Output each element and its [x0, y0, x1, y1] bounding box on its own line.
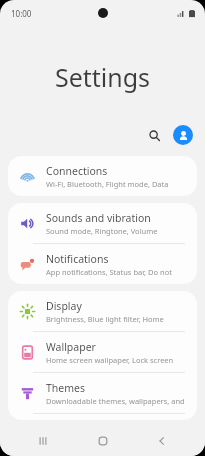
button[interactable]: Wallpaper [8, 332, 197, 372]
staticText: 10:00 [11, 8, 32, 19]
button[interactable]: Home [86, 426, 120, 456]
staticText: Wi-Fi, Bluetooth, Flight mode, Data usag… [46, 179, 187, 189]
staticText: Sounds and vibration [46, 211, 151, 225]
button[interactable]: Display [8, 291, 197, 331]
button[interactable]: Notifications [8, 244, 197, 284]
button[interactable]: Themes [8, 373, 197, 413]
button[interactable]: Account [173, 125, 193, 145]
staticText: Settings [0, 60, 205, 94]
staticText: Sound mode, Ringtone, Volume [46, 226, 158, 236]
staticText: Home screen wallpaper, Lock screen wallp… [46, 355, 187, 365]
button[interactable]: Sounds and vibration [8, 203, 197, 243]
button[interactable]: Connections [8, 156, 197, 196]
staticText: Downloadable themes, wallpapers, and ico… [46, 396, 187, 406]
staticText: Themes [46, 381, 86, 395]
staticText: Connections [46, 164, 108, 178]
button[interactable]: Recents [26, 426, 60, 456]
staticText: Wallpaper [46, 340, 96, 354]
staticText: App notifications, Status bar, Do not di… [46, 267, 187, 277]
staticText: Display [46, 299, 82, 313]
staticText: Brightness, Blue light filter, Home scre… [46, 314, 187, 324]
button[interactable]: Back [145, 426, 179, 456]
button[interactable]: Search [143, 124, 165, 146]
staticText: Notifications [46, 252, 109, 266]
